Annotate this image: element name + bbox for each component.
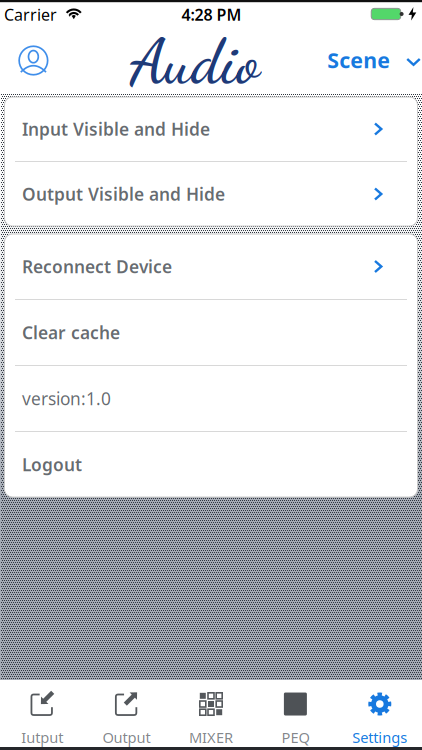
staticText: Audio: [130, 25, 260, 99]
staticText: Carrier: [4, 4, 57, 25]
staticText: Settings: [352, 727, 407, 747]
staticText: MIXER: [189, 727, 233, 747]
button[interactable]: Clear cache: [4, 300, 417, 365]
staticText: Iutput: [21, 727, 63, 747]
button[interactable]: Logout: [4, 432, 417, 497]
button[interactable]: version:1.0: [4, 366, 417, 431]
staticText: version:1.0: [22, 387, 111, 410]
button[interactable]: Iutput: [0, 680, 84, 747]
staticText: Output Visible and Hide: [22, 182, 225, 205]
button[interactable]: Scene: [327, 46, 421, 74]
staticText: Scene: [327, 46, 390, 74]
button[interactable]: MIXER: [169, 680, 253, 747]
button[interactable]: Output: [84, 680, 169, 747]
button[interactable]: Reconnect Device: [4, 234, 417, 299]
button[interactable]: Account: [18, 45, 48, 75]
staticText: Output: [103, 727, 151, 747]
button[interactable]: Settings: [338, 680, 422, 747]
staticText: Input Visible and Hide: [22, 117, 210, 140]
staticText: Reconnect Device: [22, 255, 172, 278]
staticText: Clear cache: [22, 321, 120, 344]
staticText: PEQ: [281, 727, 309, 747]
staticText: 4:28 PM: [181, 4, 241, 25]
button[interactable]: Output Visible and Hide: [4, 162, 417, 226]
staticText: Logout: [22, 453, 82, 476]
button[interactable]: PEQ: [253, 680, 338, 747]
button[interactable]: Input Visible and Hide: [4, 97, 417, 161]
